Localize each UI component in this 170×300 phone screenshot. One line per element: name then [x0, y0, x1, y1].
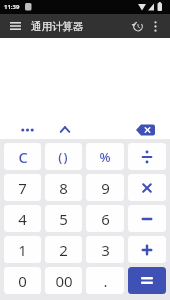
- button[interactable]: [128, 205, 166, 232]
- staticText: 8: [59, 178, 68, 198]
- button[interactable]: 7: [4, 174, 41, 201]
- staticText: .: [103, 271, 108, 291]
- staticText: 4: [18, 209, 27, 229]
- button[interactable]: 4: [4, 205, 41, 232]
- button[interactable]: [148, 19, 162, 33]
- button[interactable]: 1: [4, 236, 41, 263]
- button[interactable]: 00: [45, 267, 82, 294]
- staticText: 2: [59, 240, 68, 260]
- staticText: (): [58, 148, 69, 166]
- button[interactable]: [8, 120, 46, 139]
- button[interactable]: [6, 17, 24, 35]
- staticText: 6: [101, 209, 110, 229]
- button[interactable]: [128, 143, 166, 170]
- staticText: 0: [18, 271, 27, 291]
- button[interactable]: [128, 267, 166, 294]
- button[interactable]: C: [4, 143, 41, 170]
- staticText: 1: [18, 240, 27, 260]
- button[interactable]: 3: [86, 236, 124, 263]
- staticText: 通用计算器: [31, 20, 84, 33]
- staticText: 11:39: [4, 3, 20, 11]
- staticText: C: [18, 147, 28, 167]
- staticText: %: [99, 148, 111, 166]
- button[interactable]: [128, 174, 166, 201]
- button[interactable]: 9: [86, 174, 124, 201]
- button[interactable]: 2: [45, 236, 82, 263]
- button[interactable]: [129, 18, 146, 35]
- button[interactable]: 8: [45, 174, 82, 201]
- staticText: 7: [18, 178, 27, 198]
- staticText: 3: [101, 240, 110, 260]
- button[interactable]: 0: [4, 267, 41, 294]
- button[interactable]: [46, 120, 84, 139]
- button[interactable]: [123, 120, 162, 139]
- button[interactable]: 6: [86, 205, 124, 232]
- button[interactable]: [128, 236, 166, 263]
- button[interactable]: %: [86, 143, 124, 170]
- button[interactable]: (): [45, 143, 82, 170]
- button[interactable]: .: [86, 267, 124, 294]
- button[interactable]: 5: [45, 205, 82, 232]
- staticText: 00: [55, 271, 73, 291]
- staticText: 5: [59, 209, 68, 229]
- staticText: 9: [101, 178, 110, 198]
